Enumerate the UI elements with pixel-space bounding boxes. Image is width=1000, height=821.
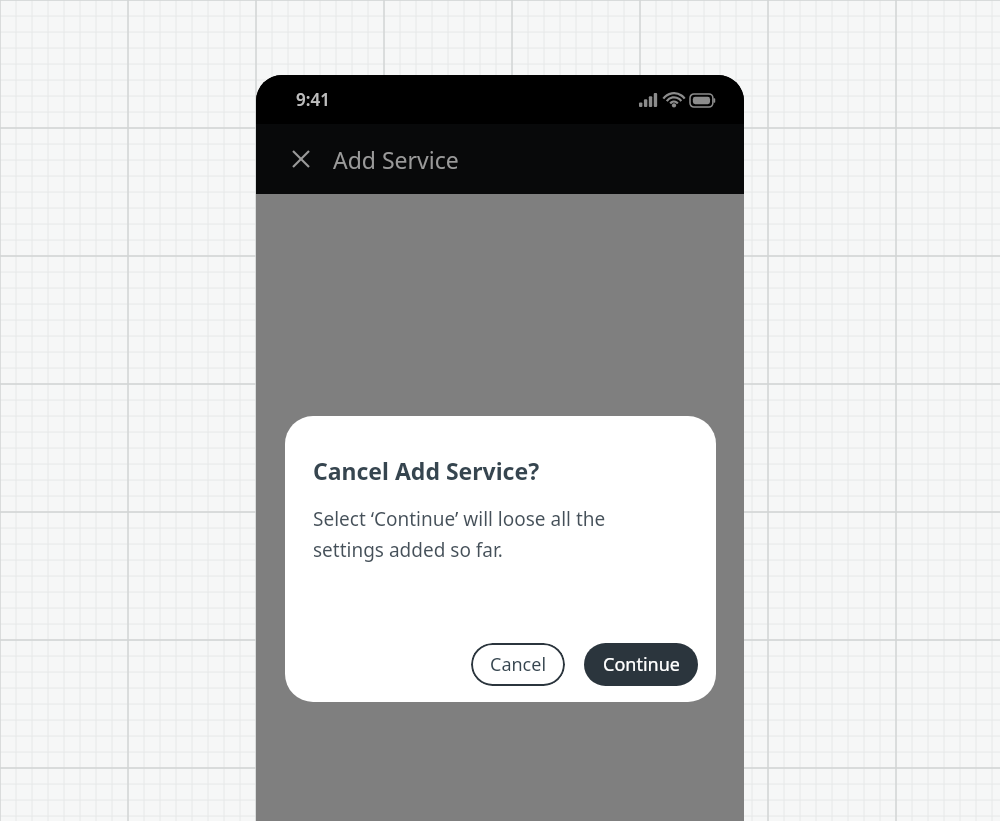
button[interactable]: Continue bbox=[584, 643, 698, 686]
button[interactable]: Cancel bbox=[471, 643, 565, 686]
staticText: Add Service bbox=[333, 144, 459, 175]
staticText: Continue bbox=[603, 652, 680, 677]
staticText: Select ‘Continue’ will loose all the set… bbox=[313, 506, 606, 562]
staticText: Cancel Add Service? bbox=[313, 455, 540, 486]
staticText: Cancel bbox=[490, 652, 547, 677]
staticText: 9:41 bbox=[296, 88, 330, 111]
button[interactable]: Close bbox=[279, 137, 323, 181]
